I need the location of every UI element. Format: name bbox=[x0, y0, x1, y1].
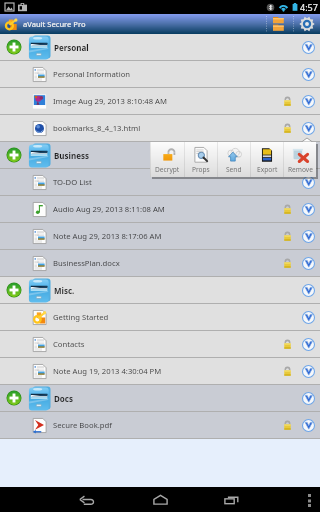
staticText: Note Aug 19, 2013 4:30:04 PM bbox=[53, 366, 162, 376]
button[interactable]: Home bbox=[147, 487, 173, 512]
staticText: TO-DO List bbox=[53, 177, 92, 187]
button[interactable]: Image Aug 29, 2013 8:10:48 AM bbox=[0, 88, 320, 114]
button[interactable]: Expand bbox=[298, 172, 318, 192]
button[interactable]: Expand bbox=[298, 37, 318, 57]
button[interactable]: Personal bbox=[0, 34, 320, 60]
button[interactable]: Secure Book.pdf bbox=[0, 412, 320, 438]
button[interactable]: Contacts bbox=[0, 331, 320, 357]
staticText: Contacts bbox=[53, 339, 85, 349]
staticText: 4:57 bbox=[300, 1, 318, 13]
button[interactable]: BusinessPlan.docx bbox=[0, 250, 320, 276]
button[interactable]: Decrypt bbox=[151, 142, 184, 177]
button[interactable]: Personal Information bbox=[0, 61, 320, 87]
staticText: Docs bbox=[54, 393, 73, 404]
button[interactable]: Send bbox=[218, 142, 250, 177]
staticText: Personal bbox=[54, 42, 89, 53]
button[interactable]: Settings bbox=[294, 14, 320, 34]
button[interactable]: Expand bbox=[298, 415, 318, 435]
button[interactable]: Expand bbox=[298, 253, 318, 273]
staticText: aVault Secure Pro bbox=[23, 19, 86, 29]
staticText: BusinessPlan.docx bbox=[53, 258, 120, 268]
button[interactable]: Folders bbox=[267, 14, 293, 34]
button[interactable]: TO-DO List bbox=[0, 169, 320, 195]
button[interactable]: Expand bbox=[298, 334, 318, 354]
button[interactable]: Business bbox=[0, 142, 320, 168]
button[interactable]: Getting Started bbox=[0, 304, 320, 330]
button[interactable]: Docs bbox=[0, 385, 320, 411]
button[interactable]: Misc. bbox=[0, 277, 320, 303]
staticText: Props bbox=[192, 165, 210, 174]
button[interactable]: Recent apps bbox=[218, 487, 244, 512]
button[interactable]: Expand bbox=[298, 361, 318, 381]
staticText: Decrypt bbox=[155, 165, 180, 174]
button[interactable]: Expand bbox=[298, 307, 318, 327]
staticText: Remove bbox=[288, 165, 313, 174]
staticText: Business bbox=[54, 150, 89, 161]
button[interactable]: Export bbox=[251, 142, 283, 177]
button[interactable]: Expand bbox=[298, 388, 318, 408]
button[interactable]: Note Aug 19, 2013 4:30:04 PM bbox=[0, 358, 320, 384]
staticText: Personal Information bbox=[53, 69, 131, 79]
button[interactable]: Expand bbox=[298, 280, 318, 300]
staticText: Send bbox=[226, 165, 242, 174]
button[interactable]: Remove bbox=[284, 142, 316, 177]
button[interactable]: Expand bbox=[298, 199, 318, 219]
staticText: Export bbox=[257, 165, 278, 174]
button[interactable]: Expand bbox=[298, 91, 318, 111]
button[interactable]: Note Aug 29, 2013 8:17:06 AM bbox=[0, 223, 320, 249]
staticText: Note Aug 29, 2013 8:17:06 AM bbox=[53, 231, 162, 241]
staticText: Getting Started bbox=[53, 312, 109, 322]
button[interactable]: Expand bbox=[298, 145, 318, 165]
staticText: Image Aug 29, 2013 8:10:48 AM bbox=[53, 96, 167, 106]
staticText: Audio Aug 29, 2013 8:11:08 AM bbox=[53, 204, 165, 214]
button[interactable]: Expand bbox=[298, 226, 318, 246]
button[interactable]: Audio Aug 29, 2013 8:11:08 AM bbox=[0, 196, 320, 222]
staticText: bookmarks_8_4_13.html bbox=[53, 123, 141, 133]
staticText: Misc. bbox=[54, 285, 75, 296]
button[interactable]: Expand bbox=[298, 118, 318, 138]
button[interactable]: More options bbox=[298, 489, 320, 511]
staticText: Secure Book.pdf bbox=[53, 420, 112, 430]
button[interactable]: Back bbox=[74, 487, 100, 512]
button[interactable]: Expand bbox=[298, 64, 318, 84]
button[interactable]: Props bbox=[185, 142, 217, 177]
button[interactable]: bookmarks_8_4_13.html bbox=[0, 115, 320, 141]
